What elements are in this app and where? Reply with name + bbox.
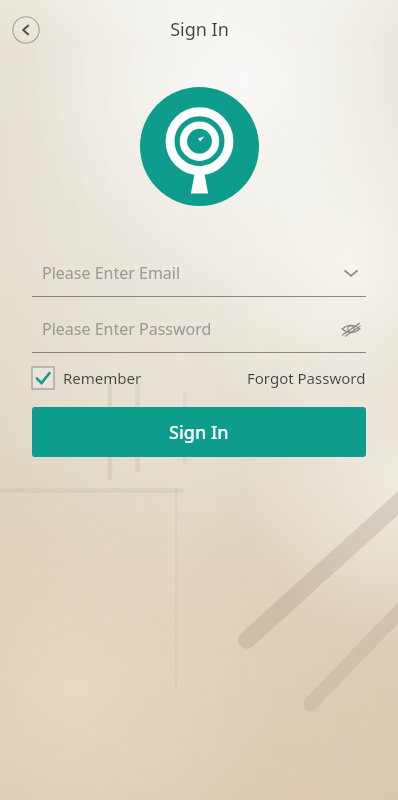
button[interactable]: Please Enter Email [32,249,366,297]
button[interactable]: Sign In [32,407,366,457]
button[interactable]: Show saved emails [336,258,366,288]
button[interactable]: Please Enter Password [32,305,366,353]
staticText: Remember [63,368,142,388]
staticText: Please Enter Email [42,262,336,284]
staticText: Sign In [169,420,229,445]
button[interactable]: Show password [336,314,366,344]
staticText: Please Enter Password [42,318,336,340]
staticText: Sign In [170,17,229,42]
button[interactable]: Remember [32,367,148,389]
button[interactable]: Forgot Password [241,368,366,388]
button[interactable]: Back [12,16,40,44]
